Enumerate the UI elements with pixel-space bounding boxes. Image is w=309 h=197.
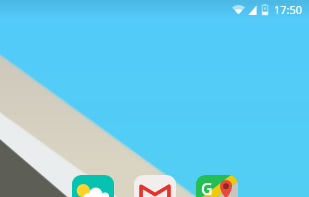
staticText: 17:50	[274, 2, 303, 17]
button[interactable]: Weather	[72, 175, 114, 197]
staticText: G	[201, 178, 213, 197]
button[interactable]: Maps	[196, 175, 238, 197]
button[interactable]: Gmail	[134, 175, 176, 197]
